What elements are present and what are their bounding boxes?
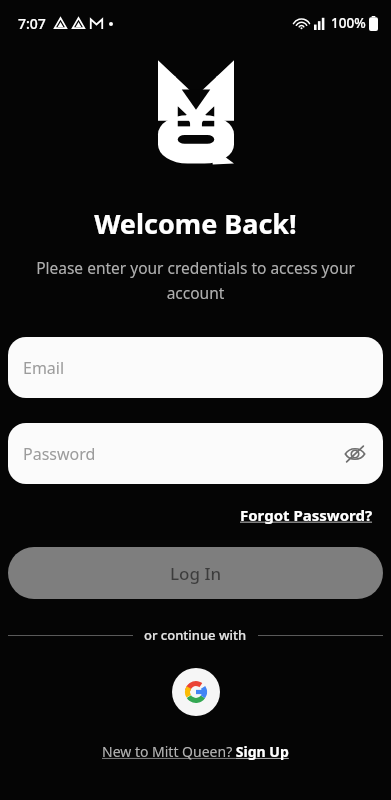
staticText: or continue with (144, 626, 247, 644)
staticText: Forgot Password? (240, 505, 373, 525)
button[interactable]: Email (8, 337, 383, 398)
button[interactable]: Continue with Google (172, 668, 220, 716)
button[interactable]: Password (8, 423, 383, 484)
staticText: Email (23, 357, 65, 379)
button[interactable]: Forgot Password? (236, 501, 377, 529)
staticText: Password (23, 443, 96, 465)
staticText: Welcome Back! (0, 205, 391, 242)
button[interactable]: New to Mitt Queen? Sign Up (98, 739, 293, 764)
button[interactable]: Log In (8, 547, 383, 599)
staticText: 7:07 (18, 14, 46, 33)
staticText: New to Mitt Queen? Sign Up (102, 742, 289, 761)
staticText: Log In (170, 562, 222, 585)
staticText: Please enter your credentials to access … (33, 257, 358, 304)
staticText: 100% (331, 14, 366, 32)
button[interactable]: Show password (340, 439, 370, 469)
